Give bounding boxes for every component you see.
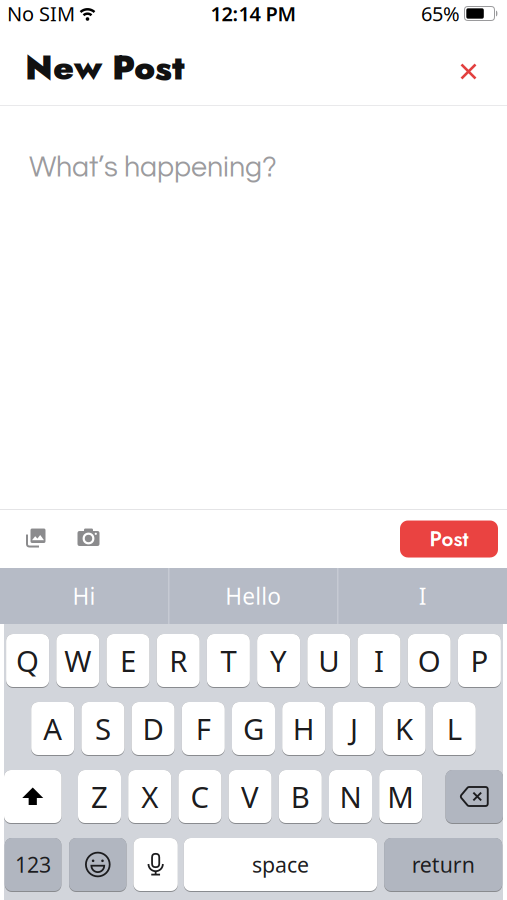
staticText: return: [412, 850, 475, 879]
staticText: O: [418, 641, 441, 680]
button[interactable]: Shift: [4, 770, 61, 824]
button[interactable]: Y: [257, 634, 300, 688]
button[interactable]: R: [157, 634, 200, 688]
staticText: U: [318, 641, 339, 680]
button[interactable]: Hello: [169, 568, 337, 624]
button[interactable]: P: [458, 634, 501, 688]
staticText: N: [339, 777, 361, 816]
staticText: A: [43, 709, 62, 748]
button[interactable]: I: [357, 634, 400, 688]
staticText: F: [196, 709, 211, 748]
button[interactable]: N: [329, 770, 372, 824]
button[interactable]: E: [106, 634, 149, 688]
staticText: X: [141, 777, 158, 816]
button[interactable]: Add photo: [26, 529, 46, 548]
button[interactable]: W: [56, 634, 99, 688]
button[interactable]: V: [229, 770, 272, 824]
staticText: J: [350, 709, 358, 748]
staticText: L: [447, 709, 462, 748]
button[interactable]: X: [128, 770, 171, 824]
staticText: R: [169, 641, 187, 680]
button[interactable]: H: [282, 702, 325, 756]
button[interactable]: Hi: [0, 568, 168, 624]
button[interactable]: Delete: [445, 770, 503, 824]
button[interactable]: L: [433, 702, 476, 756]
staticText: Y: [270, 641, 287, 680]
button[interactable]: J: [332, 702, 375, 756]
button[interactable]: G: [232, 702, 275, 756]
staticText: I: [419, 581, 427, 611]
button[interactable]: I: [338, 568, 507, 624]
button[interactable]: T: [207, 634, 250, 688]
button[interactable]: A: [31, 702, 74, 756]
button[interactable]: Post: [400, 520, 498, 557]
button[interactable]: M: [379, 770, 422, 824]
button[interactable]: K: [383, 702, 426, 756]
staticText: S: [95, 709, 111, 748]
button[interactable]: F: [182, 702, 225, 756]
staticText: M: [387, 777, 414, 816]
staticText: Z: [91, 777, 108, 816]
staticText: New Post: [25, 42, 185, 93]
button[interactable]: Z: [78, 770, 121, 824]
button[interactable]: O: [408, 634, 451, 688]
staticText: G: [243, 709, 264, 748]
staticText: Post: [429, 524, 468, 554]
button[interactable]: D: [132, 702, 175, 756]
staticText: V: [241, 777, 259, 816]
staticText: C: [190, 777, 209, 816]
staticText: P: [470, 641, 488, 680]
staticText: W: [64, 641, 91, 680]
staticText: 12:14 PM: [210, 0, 296, 27]
button[interactable]: space: [184, 838, 377, 892]
staticText: D: [143, 709, 164, 748]
staticText: B: [291, 777, 310, 816]
staticText: E: [120, 641, 136, 680]
button[interactable]: 123: [5, 838, 61, 892]
staticText: H: [293, 709, 315, 748]
staticText: No SIM: [7, 0, 75, 27]
staticText: What’s happening?: [29, 153, 277, 182]
staticText: space: [252, 850, 309, 879]
button[interactable]: Q: [6, 634, 49, 688]
button[interactable]: Emoji: [69, 838, 126, 892]
button[interactable]: U: [307, 634, 350, 688]
button[interactable]: Close: [450, 53, 487, 90]
button[interactable]: Dictation: [133, 838, 178, 892]
button[interactable]: C: [178, 770, 221, 824]
staticText: Q: [16, 641, 39, 680]
staticText: 65%: [421, 0, 460, 27]
button[interactable]: B: [279, 770, 322, 824]
button[interactable]: S: [81, 702, 124, 756]
staticText: K: [395, 709, 413, 748]
staticText: 123: [15, 850, 51, 879]
staticText: Hi: [72, 581, 95, 611]
staticText: T: [220, 641, 236, 680]
staticText: Hello: [225, 581, 281, 611]
button[interactable]: Take photo: [77, 530, 99, 548]
button[interactable]: return: [384, 838, 502, 892]
staticText: I: [374, 641, 384, 680]
